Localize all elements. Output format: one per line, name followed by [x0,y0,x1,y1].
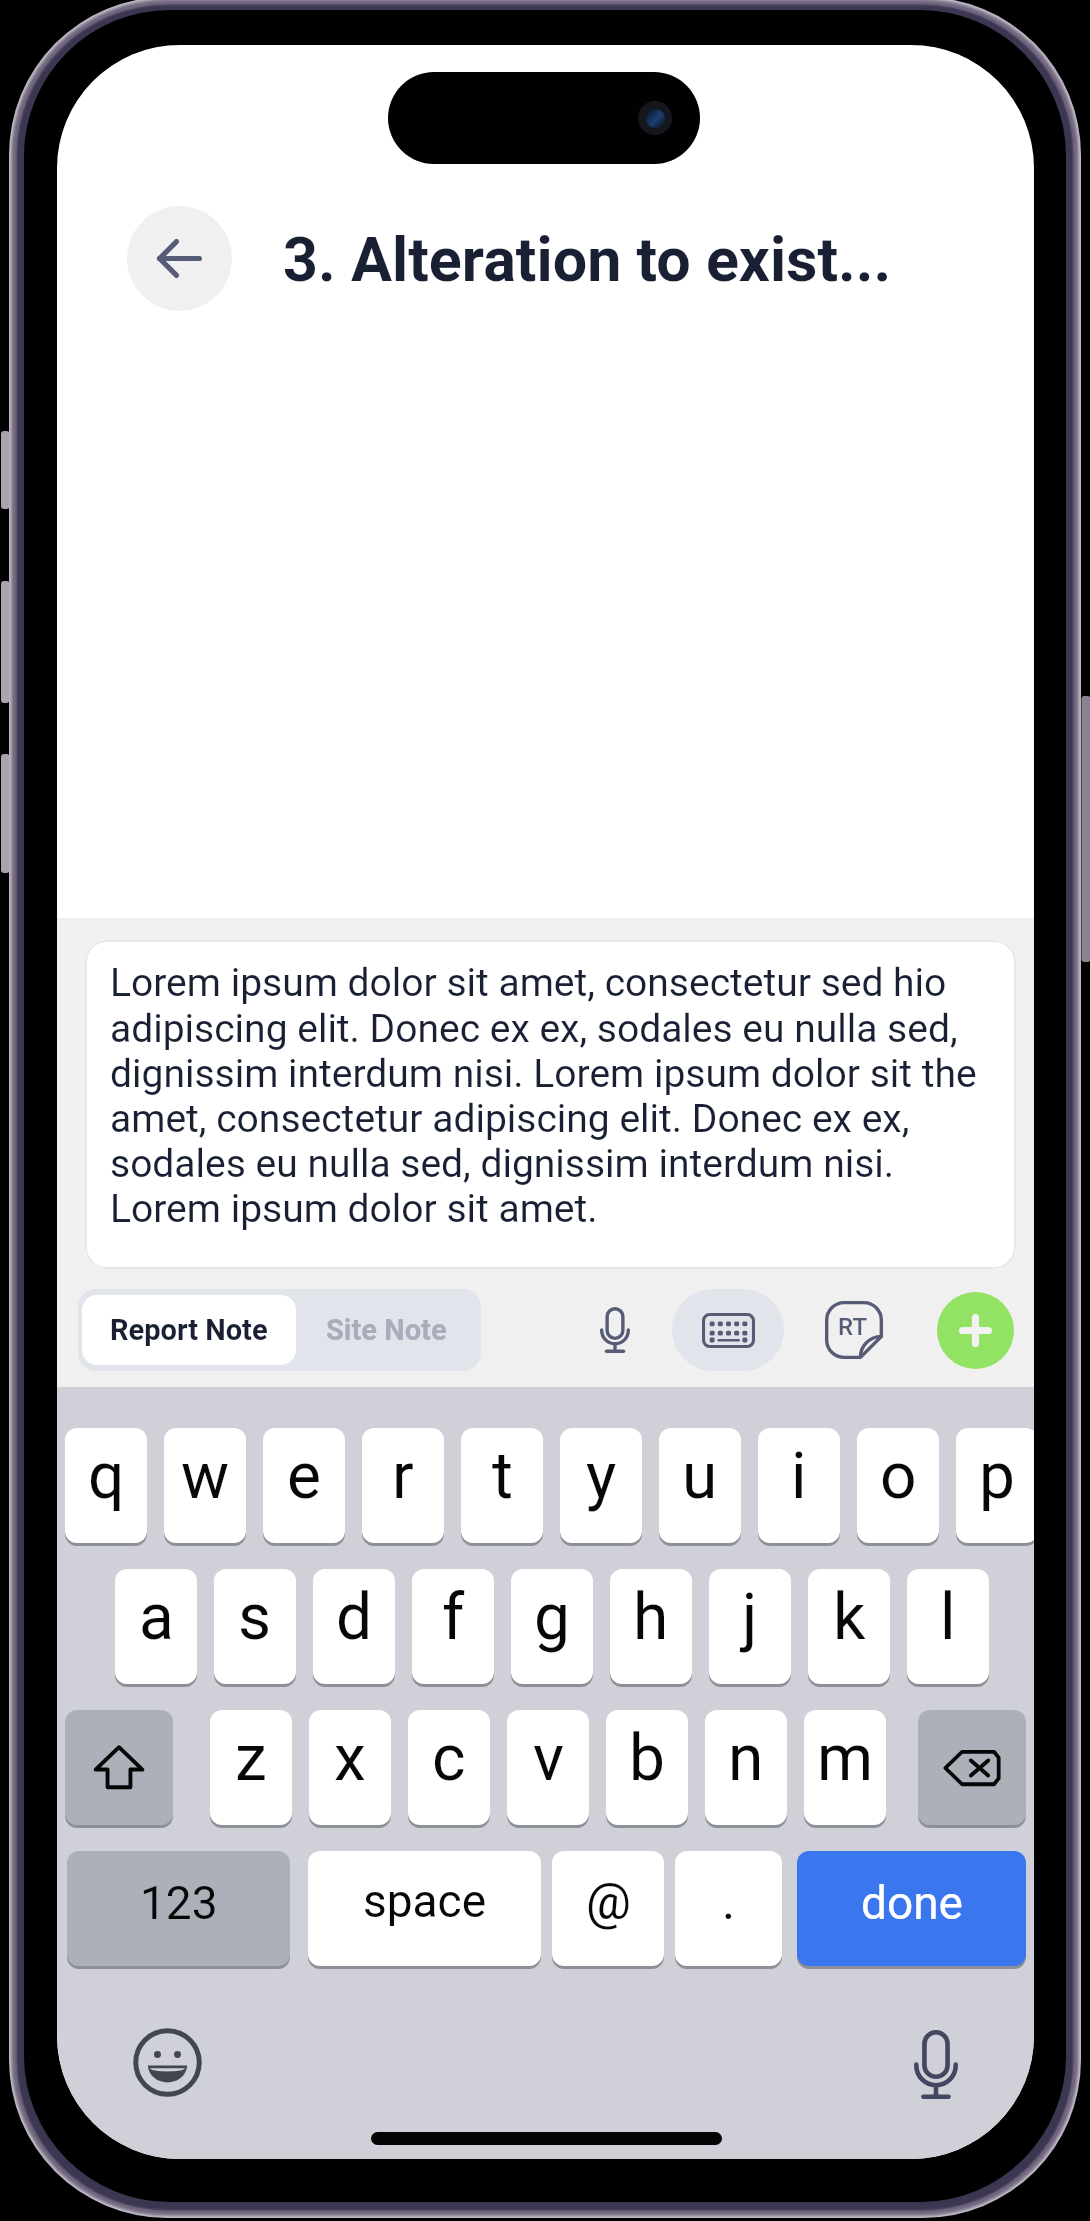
button[interactable]: space [308,1851,541,1966]
button[interactable]: q [65,1428,147,1543]
staticText: x [334,1721,366,1796]
button[interactable]: done [797,1851,1026,1966]
staticText: Site Note [326,1313,447,1347]
staticText: p [979,1439,1015,1514]
button[interactable]: @ [552,1851,664,1966]
button[interactable]: Add [937,1292,1014,1369]
button[interactable]: y [560,1428,642,1543]
button[interactable]: h [610,1569,692,1684]
button[interactable]: r [362,1428,444,1543]
button[interactable]: Site Note [296,1295,476,1365]
button[interactable]: . [675,1851,782,1966]
button[interactable]: l [907,1569,989,1684]
staticText: w [181,1439,230,1514]
staticText: f [442,1580,465,1655]
staticText: . [722,1873,736,1932]
button[interactable]: u [659,1428,741,1543]
button[interactable]: n [705,1710,787,1825]
button[interactable]: Dictate [891,2019,981,2109]
staticText: b [629,1721,665,1796]
staticText: e [287,1439,321,1514]
staticText: i [791,1439,807,1514]
button[interactable]: i [758,1428,840,1543]
button[interactable]: a [115,1569,197,1684]
button[interactable]: Backspace [918,1710,1026,1825]
button[interactable]: Back [127,206,232,311]
staticText: l [940,1580,956,1655]
button[interactable]: Voice input [580,1295,650,1365]
button[interactable]: p [956,1428,1034,1543]
button[interactable]: f [412,1569,494,1684]
staticText: z [235,1721,267,1796]
staticText: u [682,1439,718,1514]
button[interactable]: c [408,1710,490,1825]
staticText: Lorem ipsum dolor sit amet, consectetur … [110,960,996,1231]
staticText: 3. Alteration to exist... [283,224,892,295]
button[interactable]: 123 [67,1851,290,1966]
staticText: c [432,1721,466,1796]
button[interactable]: Keyboard [672,1289,784,1371]
button[interactable]: j [709,1569,791,1684]
button[interactable]: x [309,1710,391,1825]
button[interactable]: Shift [65,1710,173,1825]
staticText: a [139,1580,174,1655]
button[interactable]: k [808,1569,890,1684]
button[interactable]: o [857,1428,939,1543]
button[interactable]: v [507,1710,589,1825]
button[interactable]: d [313,1569,395,1684]
staticText: space [363,1874,487,1928]
button[interactable]: Emoji [132,2027,202,2097]
staticText: RT [838,1313,867,1341]
staticText: d [336,1580,373,1655]
staticText: v [533,1721,564,1796]
staticText: r [392,1439,414,1514]
staticText: y [586,1439,617,1514]
staticText: g [534,1580,570,1655]
staticText: j [742,1580,758,1655]
staticText: done [861,1876,963,1930]
button[interactable]: w [164,1428,246,1543]
staticText: t [492,1439,513,1514]
button[interactable]: Rich text [825,1301,883,1359]
button[interactable]: t [461,1428,543,1543]
staticText: q [88,1439,125,1514]
button[interactable]: Report Note [82,1295,296,1365]
staticText: o [880,1439,917,1514]
button[interactable]: b [606,1710,688,1825]
button[interactable]: m [804,1710,886,1825]
button[interactable]: z [210,1710,292,1825]
staticText: k [833,1580,866,1655]
staticText: m [817,1721,874,1796]
staticText: Report Note [110,1313,268,1347]
staticText: 123 [140,1876,218,1930]
staticText: n [728,1721,764,1796]
staticText: h [633,1580,669,1655]
button[interactable]: g [511,1569,593,1684]
button[interactable]: e [263,1428,345,1543]
button[interactable]: s [214,1569,296,1684]
button[interactable]: Lorem ipsum dolor sit amet, consectetur … [85,940,1016,1269]
staticText: @ [586,1873,631,1932]
staticText: s [238,1580,272,1655]
